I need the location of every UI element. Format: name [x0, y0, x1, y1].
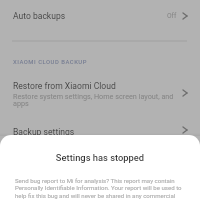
- staticText: Auto backups: [13, 11, 66, 21]
- staticText: Settings has stopped: [0, 152, 200, 163]
- staticText: Send bug report to Mi for analysis? This…: [15, 177, 185, 200]
- button[interactable]: Backup settings: [0, 117, 200, 142]
- staticText: Off: [167, 12, 177, 20]
- staticText: Restore from Xiaomi Cloud: [13, 81, 116, 91]
- staticText: Restore system settings, Home screen lay…: [13, 92, 178, 108]
- staticText: Backup settings: [13, 127, 75, 137]
- button[interactable]: Auto backups: [0, 0, 200, 41]
- staticText: XIAOMI CLOUD BACKUP: [13, 59, 87, 66]
- button[interactable]: Restore from Xiaomi Cloud: [0, 72, 200, 112]
